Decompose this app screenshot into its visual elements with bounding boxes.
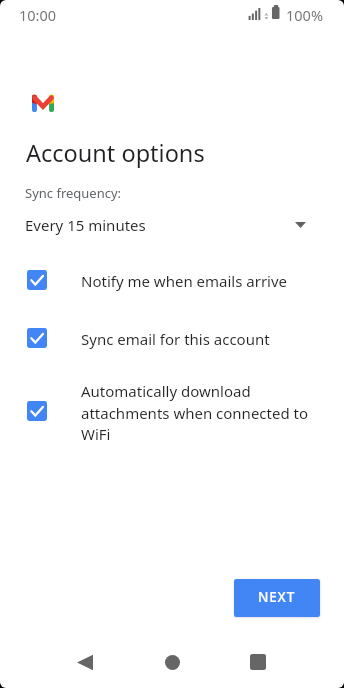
button[interactable]: NEXT xyxy=(234,579,320,617)
button[interactable]: Automatically download attachments when … xyxy=(0,372,344,450)
button[interactable]: Every 15 minutes xyxy=(0,212,344,238)
staticText: 10:00 xyxy=(19,5,57,25)
button[interactable]: Sync email for this account xyxy=(0,315,344,359)
button[interactable]: Back xyxy=(57,638,113,686)
button[interactable]: Notify me when emails arrive xyxy=(0,258,344,302)
staticText: Notify me when emails arrive xyxy=(81,271,317,291)
staticText: Sync email for this account xyxy=(81,329,317,349)
staticText: Account options xyxy=(26,137,205,169)
staticText: 100% xyxy=(286,5,323,25)
staticText: Automatically download attachments when … xyxy=(81,381,317,444)
staticText: Sync frequency: xyxy=(25,184,122,202)
staticText: NEXT xyxy=(258,588,296,606)
staticText: Every 15 minutes xyxy=(25,215,146,235)
button[interactable]: Recent apps xyxy=(230,638,286,686)
button[interactable]: Home xyxy=(144,638,200,686)
